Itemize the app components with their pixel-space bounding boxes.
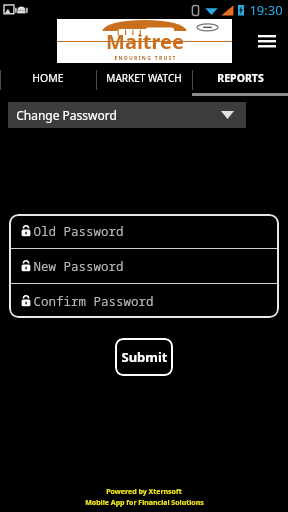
button[interactable]: REPORTS xyxy=(192,64,288,96)
staticText: Confirm Password xyxy=(33,293,154,310)
button[interactable]: Change Password xyxy=(8,102,246,128)
button[interactable]: HOME xyxy=(0,64,96,96)
staticText: Submit xyxy=(121,348,168,366)
button[interactable]: Menu xyxy=(254,29,280,55)
button[interactable]: Maitree logo xyxy=(57,19,232,63)
button[interactable]: MARKET WATCH xyxy=(96,64,192,96)
staticText: Change Password xyxy=(16,107,117,123)
button[interactable]: New Password xyxy=(9,249,279,284)
staticText: REPORTS xyxy=(217,71,264,85)
staticText: MARKET WATCH xyxy=(106,71,182,85)
staticText: New Password xyxy=(33,258,124,275)
staticText: Powered by Xternsoft xyxy=(106,487,182,497)
button[interactable]: Submit xyxy=(115,338,173,376)
staticText: HOME xyxy=(32,71,64,85)
staticText: Mobile App for Financial Solutions xyxy=(85,498,204,508)
staticText: Maitree xyxy=(106,28,184,55)
button[interactable]: Old Password xyxy=(9,214,279,249)
staticText: 19:30 xyxy=(249,1,283,19)
staticText: Old Password xyxy=(33,223,124,240)
button[interactable]: Confirm Password xyxy=(9,284,279,318)
staticText: E N D U R I N G T R U S T xyxy=(114,55,176,62)
